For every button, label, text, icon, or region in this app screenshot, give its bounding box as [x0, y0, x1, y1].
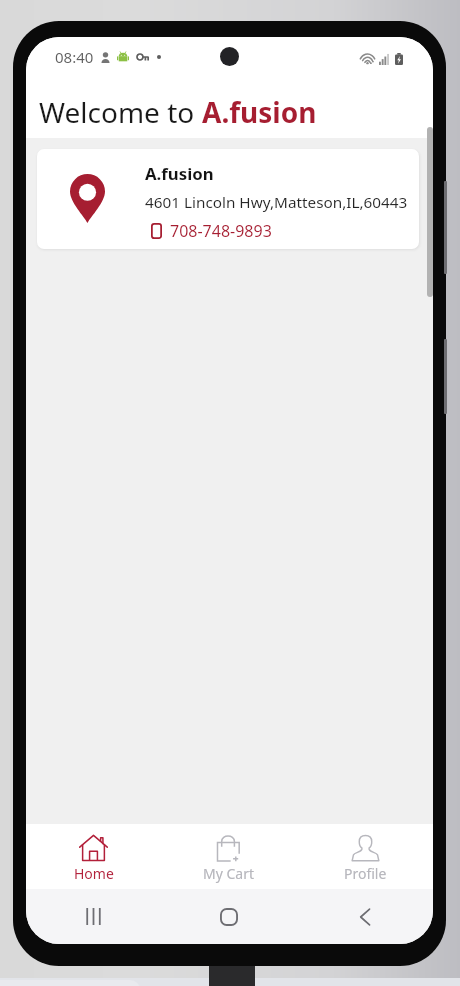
staticText: 4601 Lincoln Hwy,Matteson,IL,60443 [145, 192, 408, 213]
button[interactable]: A.fusion [37, 149, 419, 249]
button[interactable]: Home [26, 824, 161, 883]
button[interactable]: Recent apps [26, 908, 161, 925]
button[interactable]: My Cart [161, 824, 297, 883]
button[interactable]: Profile [297, 824, 433, 883]
button[interactable]: Home [161, 908, 297, 926]
button[interactable]: Back [297, 908, 433, 926]
staticText: 08:40 [55, 47, 94, 67]
staticText: Welcome to [39, 93, 202, 131]
staticText: 708-748-9893 [170, 220, 272, 242]
staticText: Profile [344, 864, 387, 883]
staticText: A.fusion [145, 162, 214, 185]
staticText: Home [74, 864, 114, 883]
staticText: My Cart [203, 864, 255, 883]
staticText: A.fusion [202, 93, 317, 131]
